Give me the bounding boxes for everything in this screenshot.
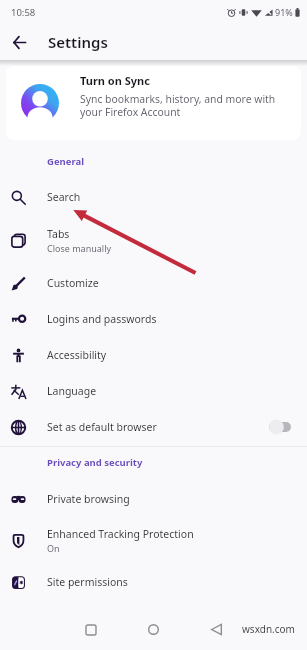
staticText: Settings [48, 32, 108, 52]
button[interactable]: Enhanced Tracking Protection [0, 517, 307, 563]
button[interactable]: Logins and passwords [0, 301, 307, 337]
staticText: wsxdn.com [242, 622, 295, 636]
staticText: Private browsing [47, 492, 130, 506]
button[interactable]: Customize [0, 265, 307, 301]
button[interactable]: Home [141, 617, 166, 642]
button[interactable]: Delete browsing data [0, 601, 307, 637]
button[interactable]: Private browsing [0, 481, 307, 517]
button[interactable]: Site permissions [0, 563, 307, 601]
button[interactable]: Search [0, 179, 307, 215]
button[interactable]: Accessibility [0, 337, 307, 373]
button[interactable]: Back [7, 30, 31, 54]
staticText: Site permissions [47, 575, 128, 589]
staticText: Logins and passwords [47, 312, 157, 326]
staticText: Delete browsing data [47, 612, 153, 626]
staticText: Enhanced Tracking Protection [47, 527, 194, 541]
staticText: Tabs [47, 227, 70, 241]
staticText: Customize [47, 276, 99, 290]
button[interactable]: Set as default browser [0, 409, 307, 445]
button[interactable]: Language [0, 373, 307, 409]
staticText: General [47, 155, 84, 168]
staticText: Search [47, 190, 81, 204]
staticText: Sync bookmarks, history, and more with y… [80, 92, 276, 119]
staticText: 91% [275, 6, 293, 18]
button[interactable]: Toggle [265, 417, 291, 437]
staticText: On [47, 542, 60, 554]
staticText: Language [47, 384, 97, 398]
button[interactable]: Recents [78, 617, 103, 642]
staticText: Set as default browser [47, 420, 157, 434]
staticText: 10:58 [11, 6, 36, 19]
button[interactable]: Turn on Sync [6, 66, 301, 140]
button[interactable]: Back [204, 617, 229, 642]
staticText: Turn on Sync [80, 73, 150, 88]
staticText: Privacy and security [47, 456, 143, 469]
button[interactable]: Tabs [0, 215, 307, 265]
staticText: Accessibility [47, 348, 107, 362]
staticText: Close manually [47, 242, 112, 254]
